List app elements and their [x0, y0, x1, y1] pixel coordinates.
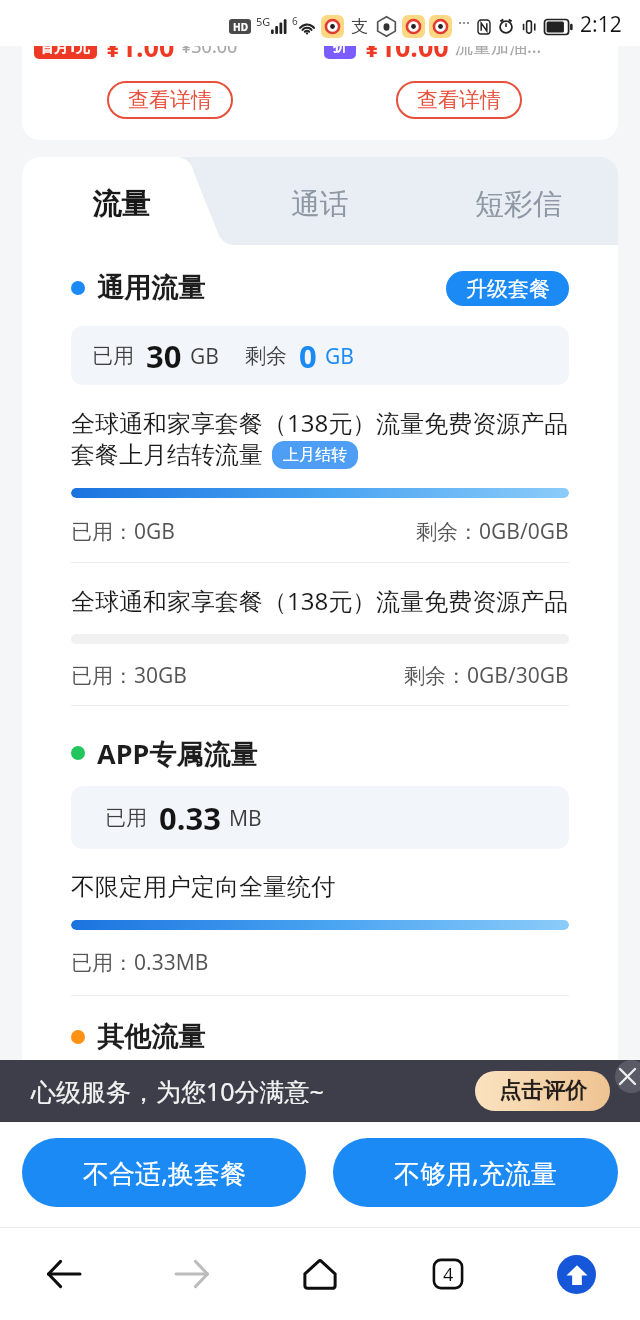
staticText: 上月结转	[283, 445, 347, 465]
staticText: 剩余：0GB/30GB	[404, 661, 569, 690]
staticText: 剩余	[245, 343, 287, 369]
staticText: 流量加油…	[455, 46, 542, 59]
staticText: 流量	[92, 186, 150, 223]
button[interactable]: Back	[0, 1228, 128, 1320]
staticText: HD	[233, 20, 248, 34]
staticText: 升级套餐	[466, 276, 550, 302]
staticText: 已用：30GB	[71, 661, 187, 690]
staticText: 5G	[256, 14, 271, 29]
button[interactable]: Home	[256, 1228, 384, 1320]
button[interactable]: 升级套餐	[446, 271, 569, 306]
staticText: 已用	[92, 343, 134, 369]
staticText: 通话	[291, 186, 349, 223]
staticText: 已用：0GB	[71, 517, 175, 546]
staticText: 心级服务，为您10分满意~	[31, 1074, 324, 1108]
button[interactable]: 短彩信	[419, 160, 618, 248]
button[interactable]: 通话	[220, 160, 419, 248]
staticText: 0	[299, 335, 317, 377]
staticText: 已用	[105, 805, 147, 831]
staticText: 30	[146, 335, 182, 377]
staticText: 不限定用户定向全量统付	[71, 872, 335, 902]
button[interactable]: Close	[615, 1060, 640, 1093]
button[interactable]: Forward	[128, 1228, 256, 1320]
staticText: 全球通和家享套餐（138元）流量免费资源产品	[71, 584, 569, 617]
staticText: 首月1元	[40, 46, 91, 56]
button[interactable]: 查看详情	[396, 81, 522, 119]
staticText: 4	[443, 1262, 454, 1287]
staticText: 剩余：0GB/0GB	[416, 517, 569, 546]
staticText: ¥30.00	[181, 46, 238, 59]
staticText: 短彩信	[475, 186, 562, 223]
button[interactable]: Scroll to top	[512, 1228, 640, 1320]
button[interactable]: 不合适,换套餐	[22, 1138, 306, 1207]
staticText: 套餐上月结转流量	[71, 440, 263, 470]
button[interactable]: 点击评价	[475, 1071, 610, 1111]
staticText: 其他流量	[97, 1020, 205, 1054]
staticText: APP专属流量	[97, 735, 258, 771]
staticText: 折	[333, 46, 347, 56]
staticText: 支	[351, 16, 368, 37]
button[interactable]: Tabs	[384, 1228, 512, 1320]
button[interactable]: 流量	[22, 160, 220, 248]
staticText: 全球通和家享套餐（138元）流量免费资源产品	[71, 406, 569, 439]
staticText: 不够用,充流量	[394, 1155, 557, 1191]
staticText: 查看详情	[128, 87, 212, 113]
staticText: ···	[458, 12, 471, 32]
staticText: 2:12	[580, 10, 622, 39]
staticText: 6	[292, 14, 298, 28]
staticText: 已用：0.33MB	[71, 948, 209, 977]
staticText: 不合适,换套餐	[83, 1155, 246, 1191]
button[interactable]: 不够用,充流量	[333, 1138, 618, 1207]
staticText: 点击评价	[499, 1077, 587, 1105]
staticText: MB	[229, 804, 262, 833]
staticText: 0.33	[159, 797, 221, 839]
staticText: 通用流量	[97, 271, 205, 305]
staticText: 查看详情	[417, 87, 501, 113]
button[interactable]: 查看详情	[107, 81, 233, 119]
staticText: ¥10.00	[364, 46, 449, 65]
staticText: GB	[325, 342, 354, 371]
staticText: GB	[190, 342, 219, 371]
staticText: ¥1.00	[105, 46, 175, 65]
